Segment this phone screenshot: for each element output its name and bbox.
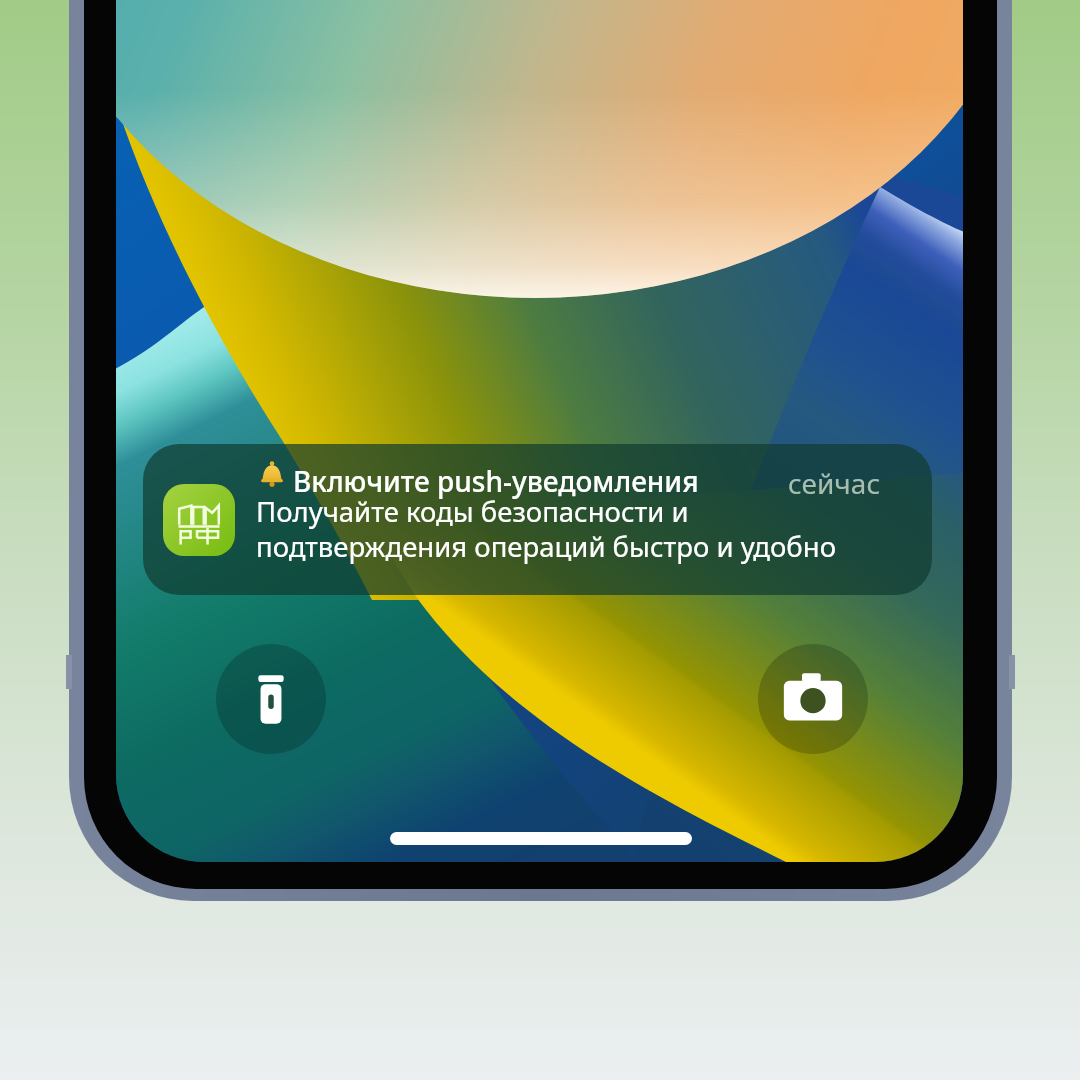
- button[interactable]: Camera: [758, 644, 868, 754]
- button[interactable]: Включите push-уведомления: [143, 444, 932, 595]
- staticText: Включите push-уведомления: [293, 462, 699, 500]
- staticText: сейчас: [788, 464, 881, 502]
- staticText: Получайте коды безопасности и подтвержде…: [256, 493, 836, 566]
- button[interactable]: Flashlight: [216, 644, 326, 754]
